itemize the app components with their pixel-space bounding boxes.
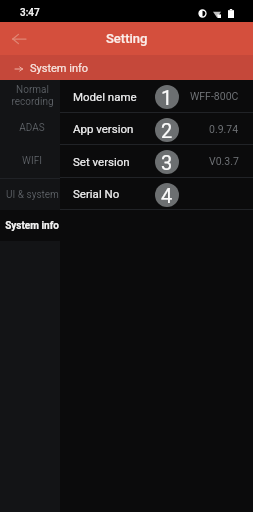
button[interactable]: Back — [4, 24, 33, 53]
staticText: WFF-800C — [190, 90, 239, 102]
staticText: V0.3.7 — [209, 155, 239, 167]
staticText: WIFI — [22, 155, 42, 167]
staticText: Normal recording — [11, 84, 54, 108]
button[interactable]: ADAS — [0, 112, 60, 144]
button[interactable]: System info — [0, 55, 253, 80]
button[interactable]: System info — [0, 210, 60, 241]
staticText: 3 — [161, 151, 173, 174]
staticText: 2 — [161, 119, 173, 142]
staticText: Model name — [73, 90, 137, 103]
button[interactable]: WIFI — [0, 144, 60, 178]
staticText: ADAS — [19, 122, 45, 134]
button[interactable]: Set version — [60, 145, 253, 177]
staticText: App version — [73, 122, 134, 135]
staticText: 1 — [161, 86, 173, 109]
staticText: System info — [30, 62, 89, 75]
staticText: 0.9.74 — [209, 123, 239, 135]
button[interactable]: Serial No — [60, 178, 253, 209]
button[interactable]: UI & system — [0, 179, 60, 210]
staticText: System info — [5, 220, 59, 232]
staticText: Set version — [73, 155, 130, 168]
staticText: 3:47 — [20, 7, 40, 19]
staticText: Serial No — [73, 187, 120, 200]
staticText: Setting — [106, 31, 148, 46]
staticText: UI & system — [6, 189, 59, 201]
button[interactable]: Model name — [60, 80, 253, 112]
button[interactable]: App version — [60, 113, 253, 144]
button[interactable]: Normal recording — [0, 80, 60, 112]
staticText: 4 — [161, 184, 173, 207]
